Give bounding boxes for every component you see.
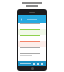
button[interactable]	[18, 23, 46, 29]
other: Back	[20, 18, 23, 21]
button[interactable]: Home	[31, 67, 34, 70]
button[interactable]	[18, 53, 46, 60]
button[interactable]	[18, 29, 46, 35]
button[interactable]	[18, 41, 46, 47]
button[interactable]	[18, 47, 46, 53]
button[interactable]: Back	[18, 15, 46, 23]
button[interactable]	[18, 35, 46, 41]
